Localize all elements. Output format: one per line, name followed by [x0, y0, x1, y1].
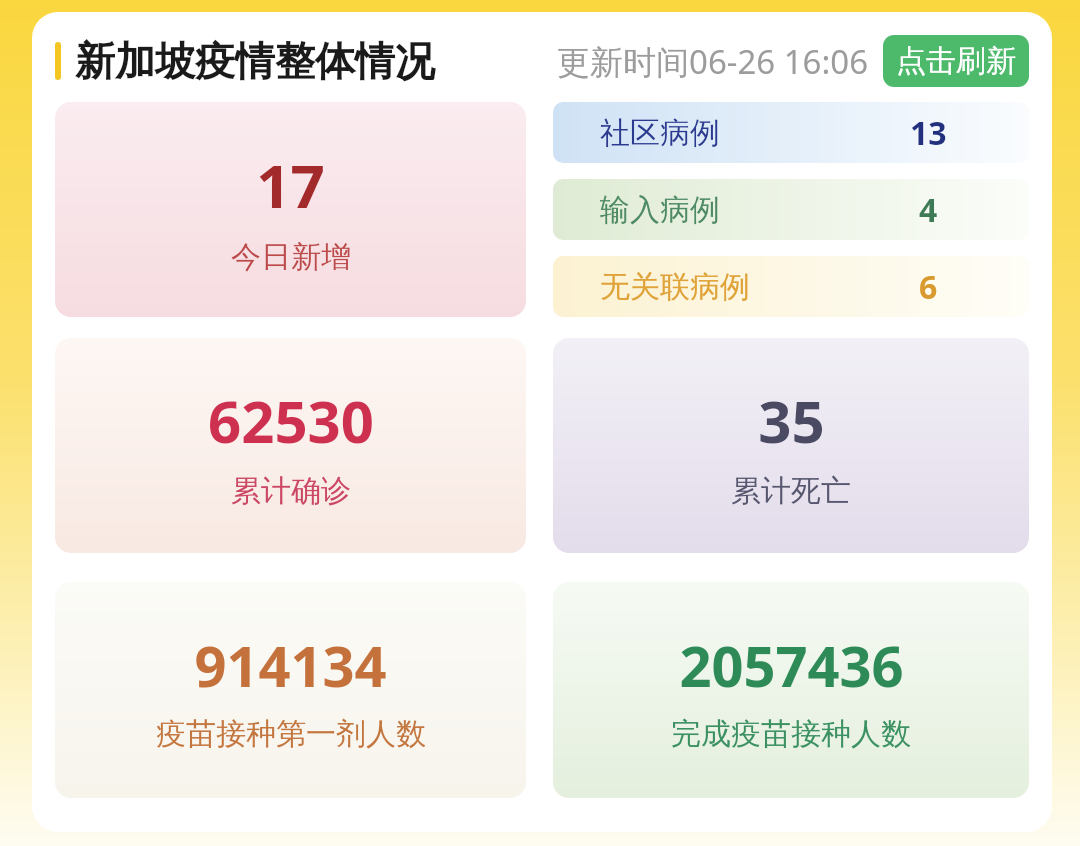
- staticText: 新加坡疫情整体情况: [75, 36, 435, 86]
- button[interactable]: 2057436: [553, 582, 1029, 798]
- staticText: 点击刷新: [896, 42, 1016, 80]
- staticText: 2057436: [679, 627, 904, 703]
- button[interactable]: 社区病例: [553, 102, 1029, 163]
- staticText: 完成疫苗接种人数: [671, 715, 911, 753]
- button[interactable]: 点击刷新: [883, 35, 1029, 87]
- staticText: 6: [919, 265, 938, 309]
- button[interactable]: 17: [55, 102, 526, 317]
- staticText: 疫苗接种第一剂人数: [156, 715, 426, 753]
- staticText: 社区病例: [600, 114, 720, 152]
- staticText: 更新时间06-26 16:06: [557, 39, 869, 84]
- staticText: 无关联病例: [600, 268, 750, 306]
- staticText: 累计确诊: [231, 472, 351, 510]
- staticText: 17: [256, 144, 325, 226]
- staticText: 今日新增: [231, 238, 351, 276]
- staticText: 914134: [194, 627, 387, 703]
- staticText: 输入病例: [600, 191, 720, 229]
- staticText: 35: [758, 381, 825, 460]
- button[interactable]: 914134: [55, 582, 526, 798]
- staticText: 13: [910, 111, 947, 155]
- button[interactable]: 输入病例: [553, 179, 1029, 240]
- staticText: 62530: [208, 381, 374, 460]
- staticText: 4: [919, 188, 938, 232]
- button[interactable]: 35: [553, 338, 1029, 553]
- button[interactable]: 62530: [55, 338, 526, 553]
- staticText: 累计死亡: [731, 472, 851, 510]
- button[interactable]: 无关联病例: [553, 256, 1029, 317]
